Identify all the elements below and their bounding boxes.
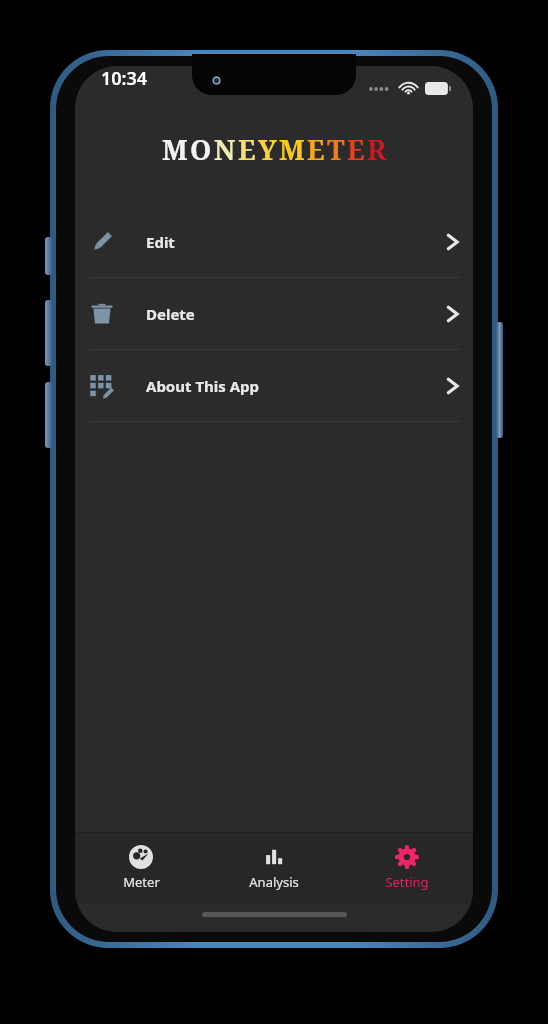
staticText: 10:34 — [101, 66, 148, 91]
staticText: R — [367, 131, 387, 168]
staticText: E — [238, 131, 256, 168]
staticText: Edit — [146, 232, 175, 252]
staticText: Delete — [146, 304, 195, 324]
staticText: N — [214, 131, 236, 168]
staticText: Setting — [385, 873, 429, 891]
button[interactable]: Delete — [75, 278, 473, 349]
staticText: T — [327, 131, 345, 168]
staticText: Meter — [123, 873, 160, 891]
staticText: O — [190, 131, 212, 168]
staticText: M — [162, 131, 188, 168]
button[interactable]: Edit — [75, 206, 473, 277]
button[interactable]: Analysis — [207, 832, 340, 904]
staticText: M — [279, 131, 305, 168]
staticText: Analysis — [249, 873, 299, 891]
button[interactable]: About This App — [75, 350, 473, 421]
staticText: E — [307, 131, 325, 168]
staticText: E — [347, 131, 365, 168]
staticText: About This App — [146, 376, 260, 396]
button[interactable]: Meter — [75, 832, 207, 904]
button[interactable]: Setting — [340, 832, 473, 904]
staticText: Y — [258, 131, 277, 168]
